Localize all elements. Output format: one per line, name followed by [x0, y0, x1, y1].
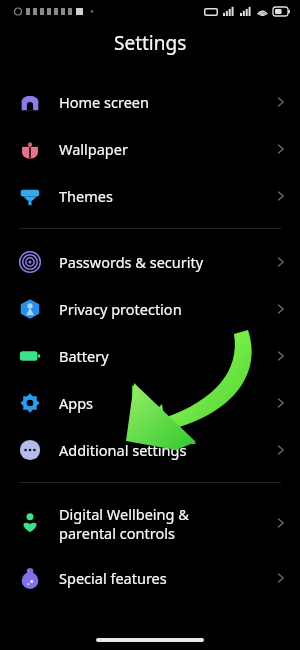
button[interactable]: Battery	[0, 332, 300, 379]
button[interactable]: Wallpaper	[0, 125, 300, 172]
staticText: Home screen	[59, 92, 276, 112]
button[interactable]: Home screen	[0, 78, 300, 125]
staticText: Special features	[59, 568, 276, 588]
staticText: Privacy protection	[59, 299, 276, 319]
staticText: Passwords & security	[59, 252, 276, 272]
button[interactable]: Themes	[0, 172, 300, 219]
staticText: Themes	[59, 186, 276, 206]
staticText: Settings	[114, 30, 187, 56]
staticText: Wallpaper	[59, 139, 276, 159]
staticText: Digital Wellbeing & parental controls	[59, 504, 276, 543]
button[interactable]: Special features	[0, 554, 300, 601]
button[interactable]: Apps	[0, 379, 300, 426]
button[interactable]: Additional settings	[0, 426, 300, 473]
button[interactable]: Passwords & security	[0, 238, 300, 285]
staticText: Additional settings	[59, 440, 276, 460]
staticText: Apps	[59, 393, 276, 413]
button[interactable]: Privacy protection	[0, 285, 300, 332]
staticText: Battery	[59, 346, 276, 366]
button[interactable]: Digital Wellbeing & parental controls	[0, 492, 300, 554]
